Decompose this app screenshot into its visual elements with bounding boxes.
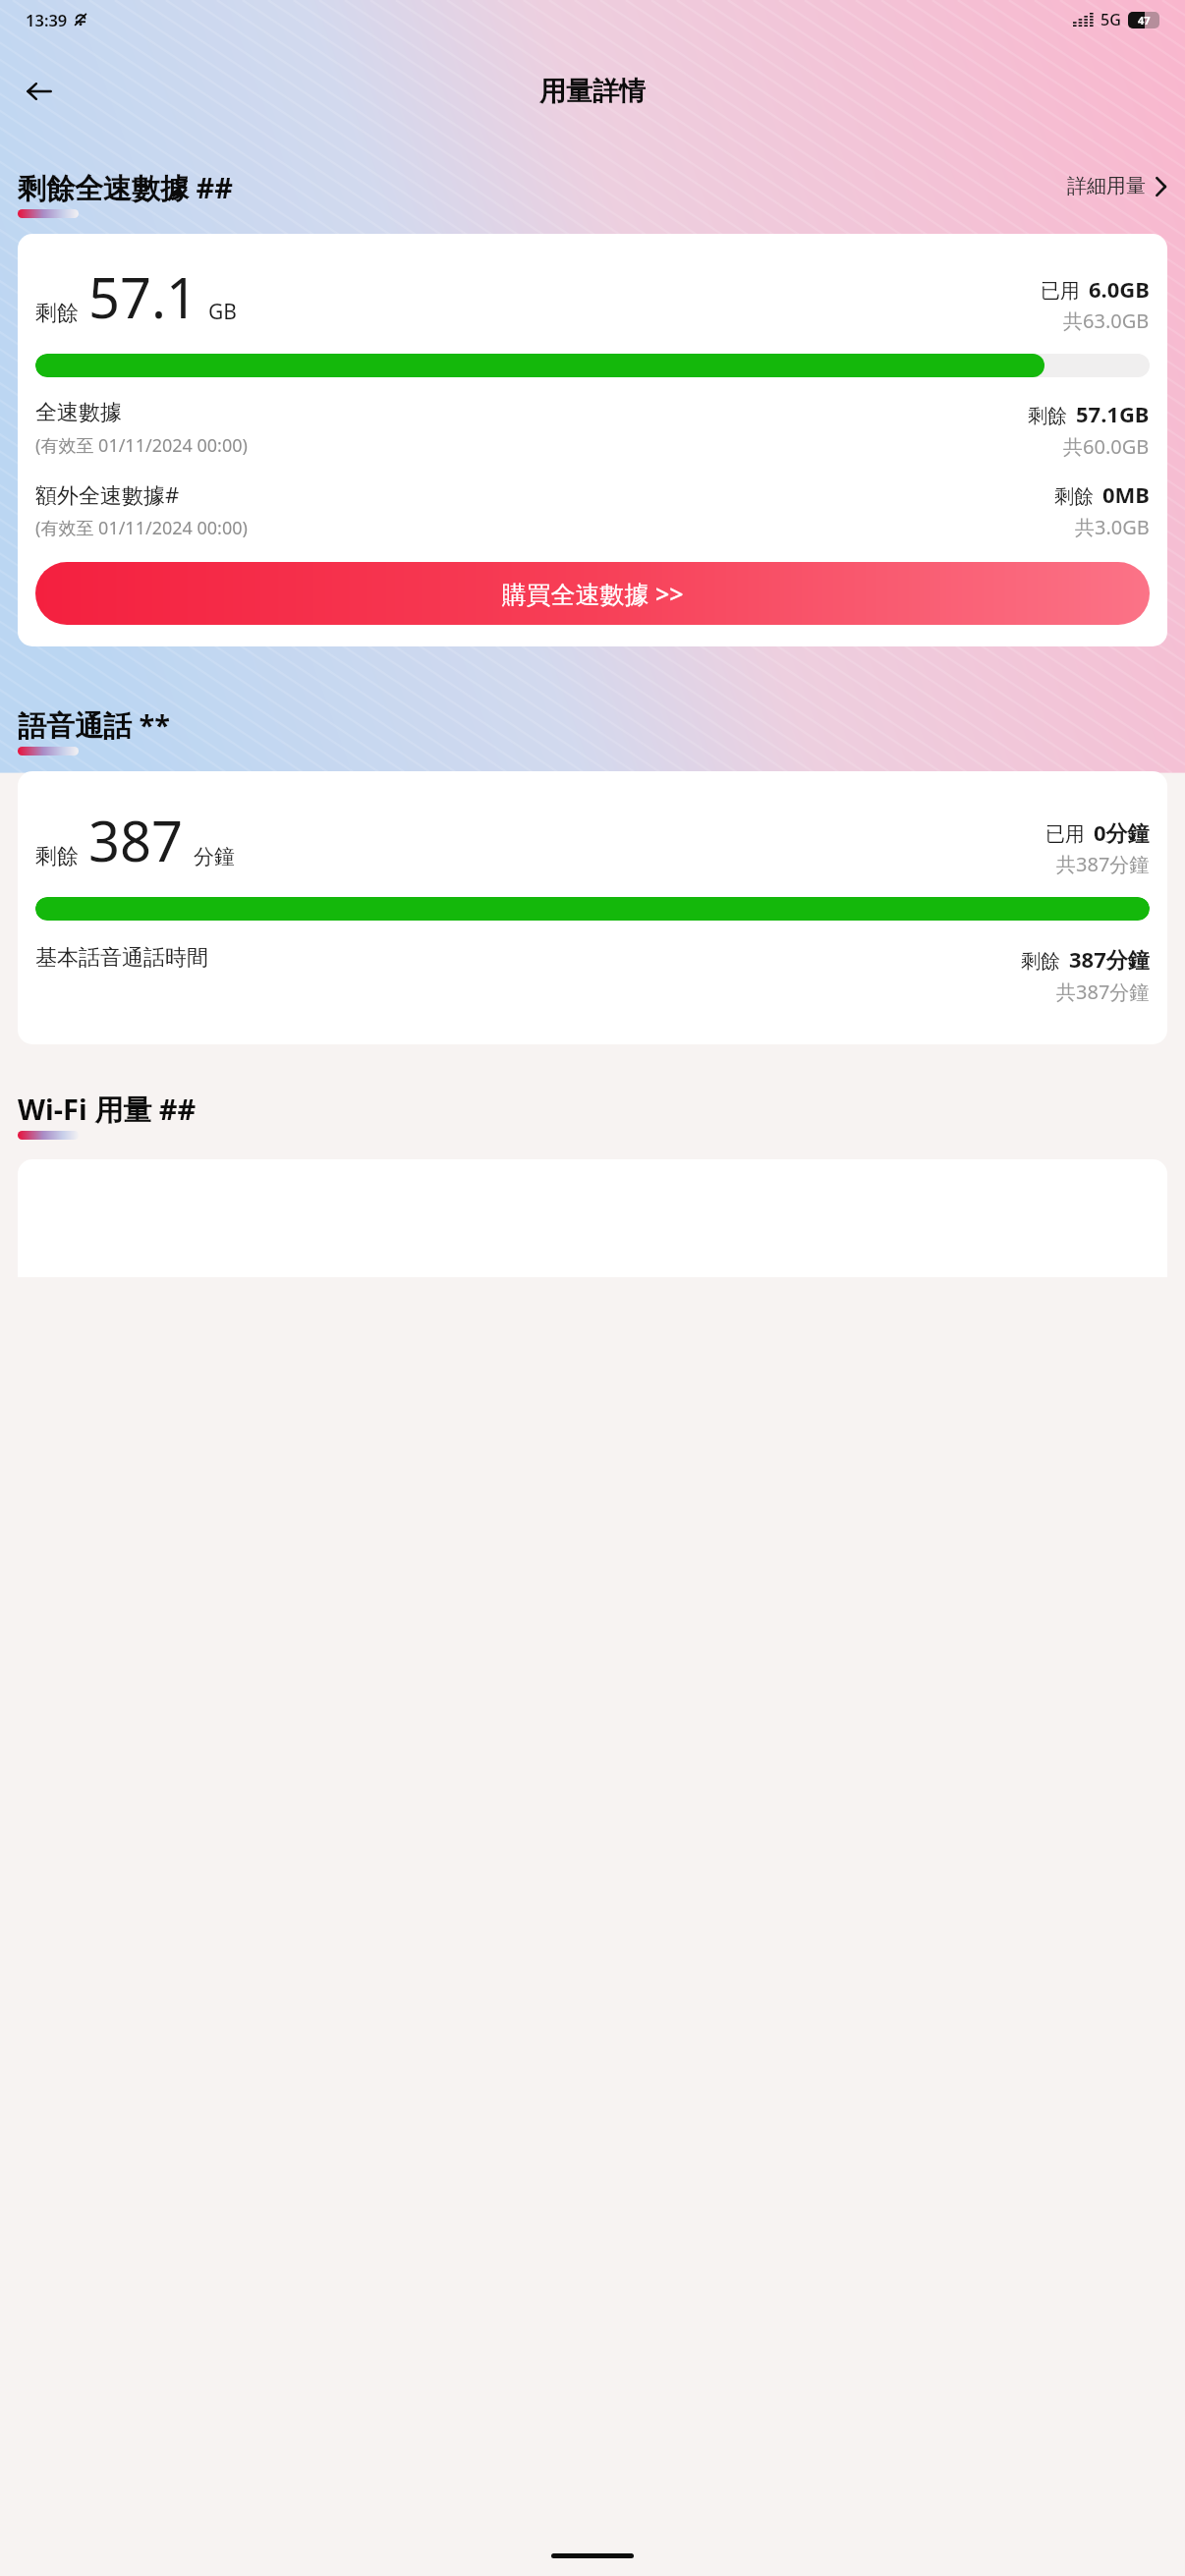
staticText: 用量詳情: [539, 75, 646, 108]
staticText: 額外全速數據#: [35, 479, 180, 509]
staticText: 全速數據: [35, 399, 122, 426]
staticText: 57.1: [88, 259, 198, 334]
staticText: 0MB: [1102, 479, 1150, 509]
staticText: 387: [88, 803, 184, 877]
staticText: 13:39: [26, 9, 68, 30]
staticText: 5G: [1100, 9, 1121, 30]
staticText: 共63.0GB: [1063, 308, 1150, 334]
staticText: 剩餘全速數據 ##: [18, 168, 234, 207]
staticText: 基本話音通話時間: [35, 944, 208, 972]
staticText: Wi-Fi 用量 ##: [18, 1090, 197, 1129]
button[interactable]: 購買全速數據 >>: [35, 562, 1150, 625]
staticText: 6.0GB: [1089, 274, 1150, 304]
button[interactable]: 剩餘: [18, 234, 1167, 646]
staticText: 語音通話 **: [18, 705, 170, 745]
staticText: 剩餘: [35, 300, 79, 327]
staticText: 已用: [1045, 822, 1085, 847]
staticText: 57.1GB: [1076, 399, 1150, 428]
staticText: GB: [208, 298, 237, 326]
staticText: 共60.0GB: [1063, 433, 1150, 460]
staticText: 387分鐘: [1069, 944, 1150, 974]
staticText: 共387分鐘: [1056, 851, 1150, 877]
button[interactable]: 剩餘: [18, 771, 1167, 1044]
button[interactable]: Back: [14, 66, 65, 117]
staticText: 剩餘: [1028, 404, 1067, 428]
staticText: 47: [1138, 13, 1151, 28]
button[interactable]: 詳細用量: [1067, 174, 1167, 198]
staticText: 分鐘: [194, 844, 235, 869]
staticText: 購買全速數據 >>: [501, 577, 684, 610]
staticText: 剩餘: [1021, 949, 1060, 974]
staticText: 已用: [1041, 279, 1080, 304]
staticText: (有效至 01/11/2024 00:00): [35, 516, 248, 540]
staticText: 剩餘: [35, 843, 79, 870]
staticText: 共387分鐘: [1056, 979, 1150, 1005]
staticText: 詳細用量: [1067, 174, 1146, 198]
staticText: (有效至 01/11/2024 00:00): [35, 433, 248, 458]
staticText: 剩餘: [1054, 484, 1094, 509]
staticText: 0分鐘: [1094, 817, 1150, 847]
staticText: 共3.0GB: [1075, 514, 1150, 540]
